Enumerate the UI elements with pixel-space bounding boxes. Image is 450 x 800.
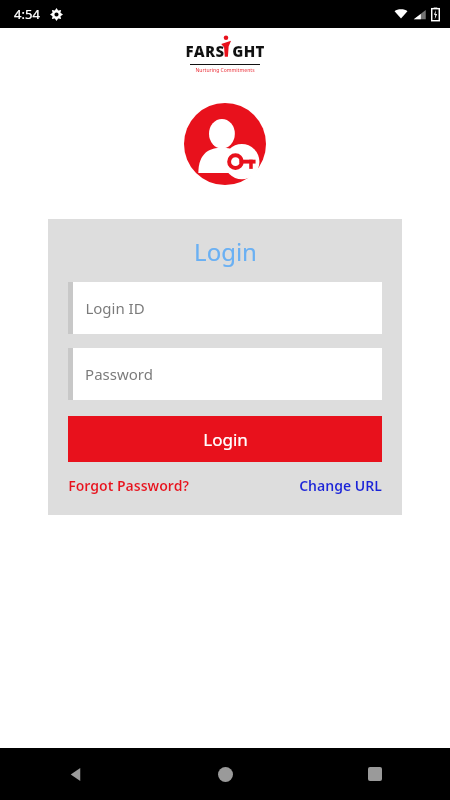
button[interactable]: Login ID <box>68 282 382 334</box>
staticText: Login ID <box>85 298 145 318</box>
button[interactable]: Recent apps <box>300 748 450 800</box>
staticText: Change URL <box>299 476 382 495</box>
staticText: Password <box>85 364 153 384</box>
button[interactable]: Home <box>150 748 300 800</box>
staticText: GHT <box>232 41 265 61</box>
button[interactable]: Back <box>0 748 150 800</box>
button[interactable]: Password <box>68 348 382 400</box>
button[interactable]: Login <box>68 416 382 462</box>
staticText: 4:54 <box>14 5 40 23</box>
staticText: FARS <box>185 41 225 61</box>
staticText: Forgot Password? <box>68 476 189 495</box>
staticText: Login <box>203 428 248 451</box>
button[interactable]: Change URL <box>299 472 382 499</box>
button[interactable]: Forgot Password? <box>68 472 189 499</box>
staticText: Login <box>194 235 257 268</box>
staticText: Nurturing Commitments <box>195 67 255 74</box>
